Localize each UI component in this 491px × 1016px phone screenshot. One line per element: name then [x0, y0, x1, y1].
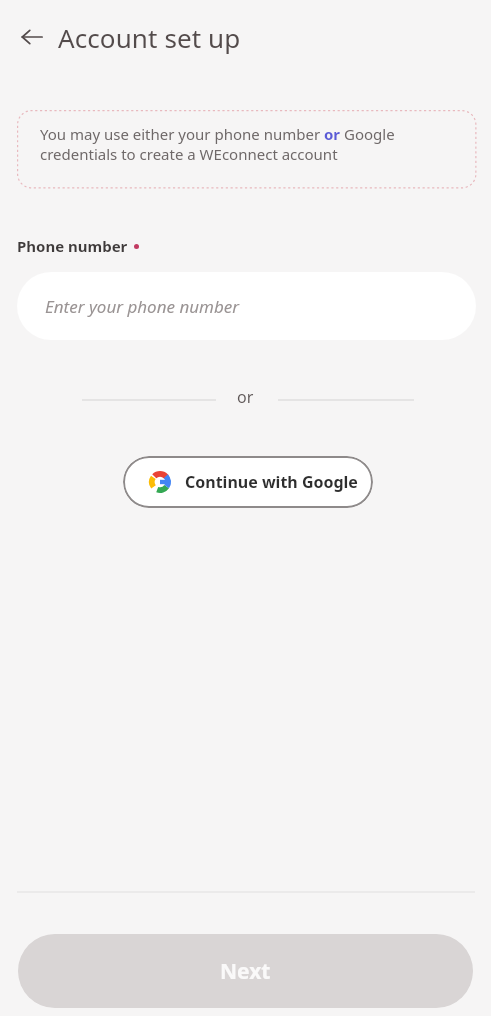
staticText: You may use either your phone number or …	[40, 124, 395, 144]
staticText: Next	[220, 957, 271, 986]
staticText: credentials to create a WEconnect accoun…	[40, 144, 338, 164]
button[interactable]: Continue with Google	[123, 456, 373, 508]
button[interactable]: Next	[18, 934, 473, 1008]
staticText: or	[237, 386, 254, 408]
button[interactable]: Back	[14, 19, 50, 55]
button[interactable]: Enter your phone number	[17, 272, 476, 340]
staticText: Continue with Google	[185, 471, 358, 493]
staticText: Phone number	[17, 236, 128, 256]
staticText: Account set up	[58, 20, 241, 55]
staticText: Enter your phone number	[45, 295, 240, 318]
